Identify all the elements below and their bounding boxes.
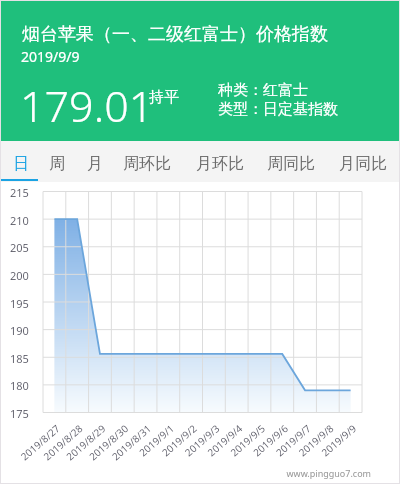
button[interactable]: 周同比 (254, 141, 324, 182)
button[interactable]: 月同比 (324, 141, 400, 182)
staticText: 种类：红富士 (218, 81, 308, 100)
staticText: 179.01 (20, 76, 154, 135)
button[interactable]: 月环比 (182, 141, 254, 182)
staticText: 2019/9/9 (21, 47, 80, 66)
button[interactable]: 周环比 (112, 141, 182, 182)
button[interactable]: 周 (38, 141, 74, 182)
staticText: 日 (13, 154, 29, 174)
staticText: 周 (49, 154, 65, 174)
staticText: 烟台苹果（一、二级红富士）价格指数 (22, 23, 328, 46)
staticText: 月 (87, 154, 103, 174)
staticText: 月环比 (196, 154, 244, 174)
button[interactable]: 月 (74, 141, 112, 182)
button[interactable]: 日 (0, 141, 38, 182)
staticText: 类型：日定基指数 (218, 100, 338, 119)
staticText: 持平 (149, 88, 179, 107)
staticText: 周环比 (123, 154, 171, 174)
staticText: 月同比 (339, 154, 387, 174)
staticText: 周同比 (267, 154, 315, 174)
